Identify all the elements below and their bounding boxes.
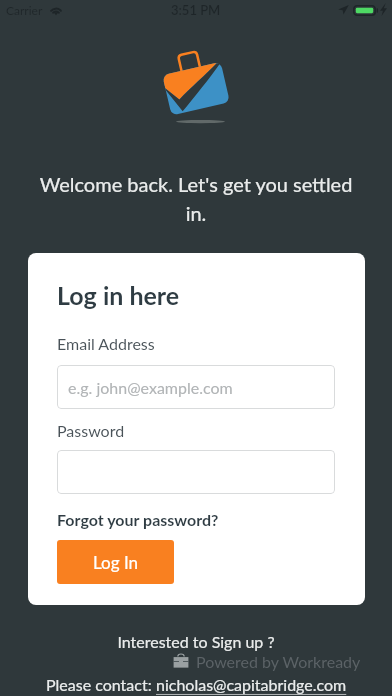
staticText: Welcome back. Let's get you settled in. [34, 172, 358, 225]
other: Workready [171, 653, 191, 670]
staticText: 3:51 PM [171, 2, 221, 18]
button[interactable]: Log In [57, 540, 174, 584]
staticText: Please contact: [46, 675, 156, 694]
button[interactable] [57, 450, 335, 494]
staticText: Email Address [57, 334, 155, 353]
button[interactable]: e.g. john@example.com [57, 365, 335, 409]
other: Location [338, 4, 349, 15]
staticText: Powered by Workready [196, 652, 361, 671]
button[interactable]: Interested to Sign up ? [0, 632, 392, 651]
button[interactable]: Forgot your password? [57, 510, 219, 529]
staticText: Log In [93, 552, 139, 572]
staticText: Password [57, 421, 125, 440]
other: Charging [380, 3, 387, 16]
button[interactable]: nicholas@capitabridge.com [156, 675, 347, 694]
other: Wi-Fi [49, 5, 63, 15]
staticText: Log in here [57, 280, 180, 310]
staticText: e.g. john@example.com [68, 378, 233, 397]
staticText: Carrier [6, 3, 43, 17]
